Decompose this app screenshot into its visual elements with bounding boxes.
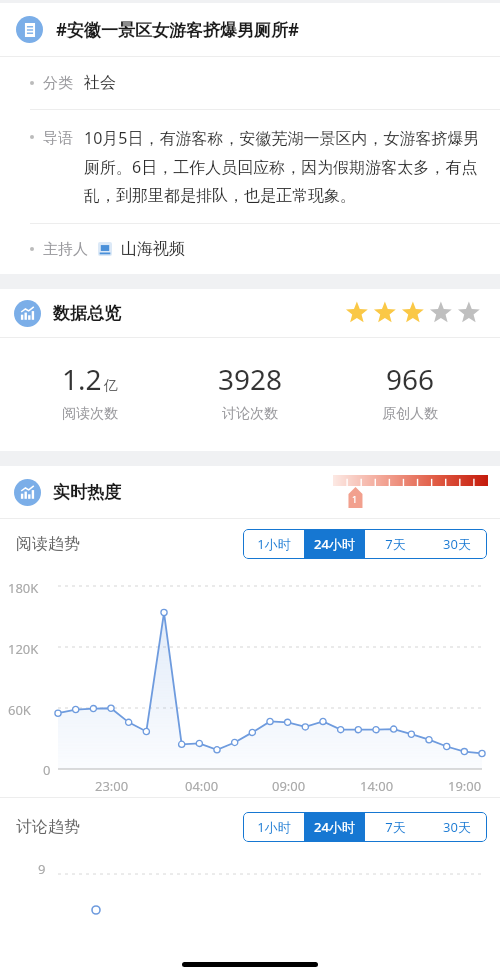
button[interactable]: 7天 [365, 529, 426, 559]
button[interactable]: #安徽一景区女游客挤爆男厕所# [0, 3, 500, 56]
staticText: 24小时 [314, 535, 355, 553]
staticText: 3928 [218, 360, 283, 398]
staticText: 数据总览 [53, 303, 121, 324]
staticText: 7天 [385, 818, 406, 836]
button[interactable]: 30天 [426, 529, 487, 559]
staticText: 亿 [104, 377, 118, 395]
button[interactable]: 1小时 [243, 529, 304, 559]
staticText: 19:00 [448, 777, 482, 795]
button[interactable]: 数据总览 [0, 289, 500, 337]
button[interactable]: 966 [340, 360, 480, 423]
button[interactable]: 24小时 [304, 529, 365, 559]
staticText: 社会 [84, 73, 116, 93]
staticText: 120K [8, 640, 39, 658]
button[interactable]: 导语 [0, 110, 500, 223]
button[interactable]: 实时热度 [0, 466, 500, 518]
staticText: 14:00 [360, 777, 394, 795]
button[interactable]: 分类 [0, 57, 500, 109]
staticText: 山海视频 [121, 239, 185, 259]
button[interactable]: 7天 [365, 812, 426, 842]
staticText: 30天 [443, 818, 471, 836]
staticText: 讨论趋势 [16, 817, 80, 837]
button[interactable]: 主持人 [0, 224, 500, 274]
staticText: 1.2 [62, 360, 102, 398]
staticText: 10月5日，有游客称，安徽芜湖一景区内，女游客挤爆男厕所。6日，工作人员回应称，… [84, 127, 482, 206]
staticText: 60K [8, 701, 31, 719]
staticText: 实时热度 [53, 482, 121, 503]
staticText: 1小时 [257, 818, 291, 836]
staticText: 原创人数 [382, 405, 438, 423]
staticText: 966 [386, 360, 435, 398]
staticText: 1小时 [257, 535, 291, 553]
staticText: 30天 [443, 535, 471, 553]
staticText: 0 [43, 761, 51, 779]
staticText: 阅读次数 [62, 405, 118, 423]
staticText: 7天 [385, 535, 406, 553]
staticText: #安徽一景区女游客挤爆男厕所# [56, 18, 299, 41]
button[interactable]: 30天 [426, 812, 487, 842]
staticText: 23:00 [95, 777, 129, 795]
staticText: 导语 [43, 129, 73, 148]
staticText: 04:00 [185, 777, 219, 795]
button[interactable]: 3928 [180, 360, 320, 423]
button[interactable]: 24小时 [304, 812, 365, 842]
staticText: 1 [352, 493, 358, 505]
staticText: 分类 [43, 74, 73, 93]
staticText: 180K [8, 579, 39, 597]
button[interactable]: 1.2 [20, 360, 160, 423]
staticText: 主持人 [43, 240, 88, 259]
staticText: 9 [38, 860, 46, 878]
staticText: 24小时 [314, 818, 355, 836]
button[interactable]: 1小时 [243, 812, 304, 842]
staticText: 讨论次数 [222, 405, 278, 423]
staticText: 09:00 [272, 777, 306, 795]
staticText: 阅读趋势 [16, 534, 80, 554]
